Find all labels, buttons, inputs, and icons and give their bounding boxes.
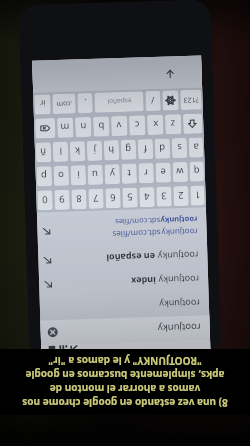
button[interactable]: e (155, 162, 171, 183)
button[interactable]: t (121, 163, 137, 184)
button[interactable]: ?123 (180, 89, 202, 110)
button[interactable]: o (53, 166, 69, 186)
button[interactable]: g (121, 139, 136, 160)
staticText: ñ (40, 145, 46, 158)
button[interactable]: k (70, 141, 85, 162)
button[interactable]: h (104, 140, 119, 160)
staticText: o (58, 169, 64, 182)
staticText: ?123 (182, 94, 199, 105)
staticText: d (159, 142, 165, 155)
button[interactable]: rootjunky (38, 243, 208, 273)
staticText: m (60, 121, 69, 134)
staticText: r (143, 166, 148, 179)
button[interactable]: . (77, 93, 93, 113)
button[interactable]: rootjunky (37, 209, 207, 249)
button[interactable]: 5 (122, 187, 138, 208)
staticText: c (134, 118, 139, 132)
staticText: z (170, 117, 175, 130)
staticText: f (143, 142, 147, 155)
button[interactable]: x (147, 115, 163, 135)
button[interactable]: s (172, 138, 187, 158)
button[interactable]: v (111, 116, 128, 136)
button[interactable]: q (189, 161, 204, 182)
staticText: b (98, 119, 104, 133)
staticText: 6 (109, 191, 116, 204)
staticText: u (92, 168, 98, 181)
staticText: / (150, 95, 155, 107)
staticText: rootjunky (160, 227, 198, 239)
button[interactable]: Insert suggestion (41, 226, 52, 236)
staticText: n (80, 120, 86, 133)
staticText: g (125, 143, 131, 156)
staticText: index (131, 275, 158, 288)
button[interactable]: 1 (190, 185, 205, 206)
button[interactable]: y (104, 164, 120, 184)
button[interactable]: ir (34, 94, 51, 115)
button[interactable]: rootjunky (40, 315, 210, 345)
button[interactable]: c (129, 115, 146, 136)
staticText: s (177, 141, 182, 154)
button[interactable]: Clear text (48, 327, 58, 337)
button[interactable]: Settings (162, 90, 179, 111)
button[interactable]: 6 (105, 188, 121, 208)
button[interactable]: .com (52, 93, 76, 114)
button[interactable]: l (53, 142, 68, 162)
button[interactable]: j (87, 141, 102, 161)
staticText: j (93, 144, 96, 157)
staticText: 1 (194, 188, 201, 202)
staticText: ir (39, 98, 46, 109)
button[interactable]: r (138, 163, 154, 183)
staticText: en español (105, 251, 158, 264)
button[interactable]: español (94, 91, 144, 113)
button[interactable]: n (75, 117, 92, 137)
button[interactable]: a (189, 137, 203, 158)
button[interactable]: d (155, 138, 170, 159)
button[interactable]: 2 (173, 186, 189, 206)
staticText: rootjunky (159, 298, 200, 311)
staticText: "ROOTJUNKY" y le damos a "ir" (0, 354, 250, 368)
button[interactable]: Insert suggestion (43, 279, 53, 289)
staticText: a (193, 140, 199, 154)
button[interactable]: Backspace (35, 118, 56, 139)
staticText: q (193, 164, 200, 178)
staticText: 4 (143, 190, 150, 203)
staticText: t (127, 167, 131, 180)
button[interactable]: b (93, 116, 110, 137)
staticText: rootjunky (158, 274, 199, 287)
staticText: 7 (92, 192, 99, 205)
staticText: .com (55, 98, 73, 109)
staticText: 0 (41, 193, 48, 206)
button[interactable]: 7 (88, 188, 104, 209)
button[interactable]: rootjunky (39, 267, 208, 297)
staticText: k (74, 144, 80, 157)
button[interactable]: 8 (71, 189, 87, 210)
staticText: i (77, 168, 80, 181)
button[interactable]: i (70, 165, 86, 186)
button[interactable]: 0 (37, 190, 53, 211)
button[interactable]: u (87, 164, 103, 185)
staticText: vamos a ahorrar el monton de (0, 382, 250, 396)
button[interactable]: ñ (36, 142, 51, 163)
button[interactable]: Insert suggestion (42, 255, 53, 265)
button[interactable]: w (172, 162, 188, 182)
staticText: sdt.com/files (114, 216, 160, 227)
button[interactable]: m (57, 117, 74, 138)
button[interactable]: Shift (183, 113, 202, 134)
staticText: apks, simplemente buscamos en google (0, 368, 250, 382)
staticText: v (116, 119, 121, 132)
staticText: e (159, 166, 166, 179)
button[interactable]: p (36, 166, 52, 187)
button[interactable]: 9 (54, 190, 70, 210)
button[interactable]: / (145, 91, 161, 111)
staticText: 8 (75, 192, 82, 205)
button[interactable]: f (138, 139, 153, 159)
staticText: . (83, 97, 87, 109)
button[interactable]: rootjunky (40, 291, 209, 321)
button[interactable]: 3 (156, 186, 172, 207)
staticText: sdt.com/files (111, 228, 161, 240)
button[interactable]: Hide keyboard (164, 68, 176, 79)
button[interactable]: z (165, 114, 181, 135)
staticText: 5 (126, 191, 133, 204)
staticText: español (106, 97, 132, 106)
button[interactable]: 4 (139, 187, 155, 207)
